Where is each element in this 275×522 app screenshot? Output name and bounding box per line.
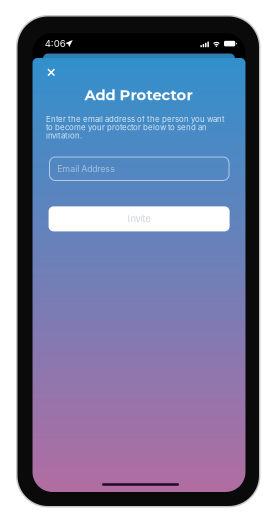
staticText: 4:06 <box>45 38 66 49</box>
staticText: Invite <box>128 213 151 225</box>
button[interactable]: Close <box>40 61 62 83</box>
staticText: Enter the email address of the person yo… <box>46 114 225 140</box>
staticText: Add Protector <box>84 86 192 104</box>
staticText: Email Address <box>57 163 115 174</box>
button[interactable]: Invite <box>49 206 230 231</box>
